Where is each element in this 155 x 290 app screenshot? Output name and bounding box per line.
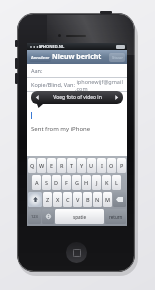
staticText: R <box>60 162 64 169</box>
staticText: A <box>35 179 39 186</box>
staticText: P <box>120 162 124 169</box>
staticText: spatie <box>73 214 87 220</box>
button[interactable]: R <box>57 158 66 173</box>
staticText: K <box>105 179 109 186</box>
button[interactable]: Kopie/Blind, Van: <box>27 78 127 91</box>
staticText: L <box>115 179 118 186</box>
staticText: S <box>45 179 49 186</box>
button[interactable]: H <box>82 175 91 190</box>
button[interactable]: Voeg foto of video in <box>31 91 123 104</box>
staticText: T <box>70 162 74 169</box>
button[interactable]: J <box>92 175 101 190</box>
button[interactable]: G <box>72 175 81 190</box>
button[interactable]: Stuur <box>109 53 125 62</box>
button[interactable]: C <box>63 192 72 207</box>
staticText: Aan: <box>31 67 43 74</box>
button[interactable]: 123 <box>28 209 41 224</box>
button[interactable]: Backspace <box>113 192 126 207</box>
button[interactable]: Shift <box>28 192 42 207</box>
button[interactable]: U <box>87 158 96 173</box>
staticText: Z <box>46 196 50 203</box>
staticText: C <box>66 196 70 203</box>
staticText: Kopie/Blind, Van: <box>31 81 75 88</box>
button[interactable]: M <box>103 192 112 207</box>
button[interactable]: Volume up <box>15 58 18 69</box>
button[interactable]: S <box>42 175 51 190</box>
button[interactable]: X <box>53 192 62 207</box>
staticText: H <box>84 179 89 186</box>
button[interactable]: N <box>93 192 102 207</box>
button[interactable]: return <box>105 209 126 224</box>
button[interactable]: Switch keyboard language <box>42 209 54 224</box>
staticText: IPHONED.NL <box>39 44 65 49</box>
staticText: 123 <box>31 214 38 219</box>
staticText: Y <box>80 162 84 169</box>
button[interactable]: Power <box>100 11 112 14</box>
button[interactable]: I <box>97 158 106 173</box>
staticText: Annuleer <box>31 55 50 60</box>
staticText: D <box>54 179 59 186</box>
other: Previous <box>35 95 40 100</box>
staticText: J <box>96 179 98 186</box>
staticText: iphonewijf@gmail.com <box>75 78 123 91</box>
button[interactable]: A <box>32 175 41 190</box>
staticText: F <box>65 179 68 186</box>
staticText: G <box>75 179 79 186</box>
button[interactable]: Aan: <box>27 64 127 77</box>
button[interactable]: V <box>73 192 82 207</box>
button[interactable]: P <box>117 158 126 173</box>
button[interactable]: Volume down <box>15 73 18 84</box>
staticText: E <box>50 162 54 169</box>
other: Next <box>114 95 119 100</box>
button[interactable]: B <box>83 192 92 207</box>
staticText: V <box>76 196 80 203</box>
staticText: return <box>109 214 123 220</box>
button[interactable]: K <box>102 175 111 190</box>
staticText: B <box>86 196 90 203</box>
staticText: N <box>95 196 100 203</box>
staticText: Nieuw bericht <box>52 52 102 62</box>
button[interactable]: Home <box>66 242 87 263</box>
button[interactable]: spatie <box>55 209 104 224</box>
button[interactable]: O <box>107 158 116 173</box>
button[interactable]: L <box>112 175 121 190</box>
staticText: Stuur <box>112 55 123 60</box>
staticText: O <box>109 162 114 169</box>
button[interactable]: Annuleer <box>29 53 51 62</box>
button[interactable]: Q <box>28 158 36 173</box>
button[interactable]: Mute switch <box>15 40 18 47</box>
button[interactable]: Y <box>77 158 86 173</box>
staticText: M <box>105 196 111 203</box>
button[interactable]: Z <box>43 192 52 207</box>
button[interactable]: T <box>67 158 76 173</box>
staticText: Sent from my iPhone <box>31 125 91 133</box>
button[interactable]: D <box>52 175 61 190</box>
button[interactable]: W <box>37 158 46 173</box>
staticText: X <box>56 196 60 203</box>
staticText: Q <box>30 162 35 169</box>
staticText: I <box>101 162 103 169</box>
button[interactable]: E <box>47 158 56 173</box>
button[interactable]: F <box>62 175 71 190</box>
staticText: W <box>39 162 45 169</box>
staticText: U <box>89 162 94 169</box>
staticText: Voeg foto of video in <box>53 94 102 101</box>
